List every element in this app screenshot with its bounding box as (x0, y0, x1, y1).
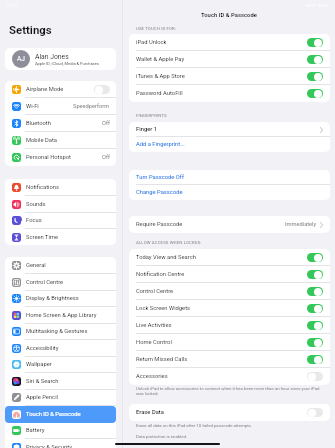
staticText: Airplane Mode (26, 86, 94, 93)
button[interactable]: Touch ID & Passcode (5, 406, 116, 423)
button[interactable]: Airplane Mode (5, 81, 116, 98)
staticText: Siri & Search (26, 378, 110, 385)
button[interactable]: Password AutoFill (129, 85, 330, 102)
staticText: Bluetooth (26, 120, 102, 127)
staticText: Require Passcode (136, 221, 285, 228)
button[interactable]: Sounds (5, 196, 116, 213)
staticText: Display & Brightness (26, 295, 110, 302)
button[interactable]: Bluetooth (5, 115, 116, 132)
staticText: Home Control (136, 339, 307, 346)
button[interactable]: Lock Screen Widgets (129, 300, 330, 317)
button[interactable]: Turn Passcode Off (129, 170, 330, 185)
button[interactable]: On (307, 38, 323, 47)
button[interactable]: Control Centre (129, 283, 330, 300)
button[interactable]: On (307, 355, 323, 364)
button[interactable]: On (307, 321, 323, 330)
button[interactable]: Notification Centre (129, 266, 330, 283)
staticText: Accessibility (26, 345, 110, 352)
button[interactable]: Apple Pencil (5, 389, 116, 406)
staticText: Personal Hotspot (26, 154, 102, 161)
button[interactable]: Off (307, 372, 323, 381)
staticText: USE TOUCH ID FOR: (136, 26, 177, 31)
staticText: Control Centre (26, 279, 110, 286)
button[interactable]: Home Control (129, 334, 330, 351)
button[interactable]: On (307, 338, 323, 347)
button[interactable]: On (307, 72, 323, 81)
staticText: Data protection is enabled. (136, 434, 188, 439)
staticText: Immediately (285, 221, 317, 228)
staticText: Mobile Data (26, 137, 110, 144)
button[interactable]: Wallet & Apple Pay (129, 51, 330, 68)
staticText: Change Passcode (136, 189, 323, 196)
button[interactable]: On (307, 304, 323, 313)
button[interactable]: Control Centre (5, 274, 116, 291)
button[interactable]: Wi-Fi (5, 98, 116, 115)
staticText: Wallpaper (26, 361, 110, 368)
staticText: FINGERPRINTS (136, 113, 167, 118)
staticText: iPad Unlock (136, 39, 307, 46)
staticText: Erase all data on this iPad after 10 fai… (136, 423, 252, 428)
button[interactable]: iTunes & App Store (129, 68, 330, 85)
staticText: Return Missed Calls (136, 356, 307, 363)
button[interactable]: Require Passcode (129, 216, 330, 233)
button[interactable]: Live Activities (129, 317, 330, 334)
button[interactable]: On (307, 55, 323, 64)
button[interactable]: Display & Brightness (5, 290, 116, 307)
staticText: Turn Passcode Off (136, 174, 323, 181)
staticText: Touch ID & Passcode (123, 12, 335, 19)
button[interactable]: Accessories (129, 368, 330, 385)
staticText: Alan Jones (35, 53, 69, 61)
button[interactable]: Today View and Search (129, 249, 330, 266)
staticText: Touch ID & Passcode (26, 411, 110, 418)
button[interactable]: Focus (5, 212, 116, 229)
button[interactable]: iPad Unlock (129, 34, 330, 51)
button[interactable]: Privacy & Security (5, 439, 116, 448)
staticText: General (26, 262, 110, 269)
button[interactable]: Notifications (5, 179, 116, 196)
button[interactable]: Siri & Search (5, 373, 116, 390)
button[interactable]: Erase Data (129, 404, 330, 421)
button[interactable]: Finger 1 (129, 122, 330, 137)
button[interactable]: Battery (5, 422, 116, 439)
staticText: Multitasking & Gestures (26, 328, 110, 335)
button[interactable]: Off (307, 408, 323, 417)
button[interactable]: On (307, 89, 323, 98)
button[interactable]: Accessibility (5, 340, 116, 357)
button[interactable]: Multitasking & Gestures (5, 323, 116, 340)
button[interactable]: On (307, 287, 323, 296)
staticText: Live Activities (136, 322, 307, 329)
button[interactable]: Home Screen & App Library (5, 307, 116, 324)
staticText: Apple Pencil (26, 394, 110, 401)
staticText: Notification Centre (136, 271, 307, 278)
button[interactable]: Mobile Data (5, 132, 116, 149)
staticText: Focus (26, 217, 110, 224)
button[interactable]: Personal Hotspot (5, 149, 116, 166)
button[interactable]: General (5, 257, 116, 274)
staticText: Password AutoFill (136, 90, 307, 97)
staticText: Settings (9, 23, 52, 36)
button[interactable]: On (307, 253, 323, 262)
button[interactable]: Screen Time (5, 229, 116, 245)
staticText: iTunes & App Store (136, 73, 307, 80)
staticText: Lock Screen Widgets (136, 305, 307, 312)
staticText: Apple ID, iCloud, Media & Purchases (35, 61, 99, 66)
staticText: Wallet & Apple Pay (136, 56, 307, 63)
button[interactable]: On (307, 270, 323, 279)
button[interactable]: Wallpaper (5, 356, 116, 373)
staticText: Speedperform (73, 103, 110, 110)
staticText: Finger 1 (136, 126, 320, 133)
staticText: AJ (17, 55, 25, 63)
button[interactable]: Add a Fingerprint... (129, 137, 330, 152)
staticText: Off (102, 154, 110, 161)
staticText: Accessories (136, 373, 307, 380)
button[interactable]: AJ (5, 48, 116, 70)
button[interactable]: Off (94, 85, 110, 94)
button[interactable]: Change Passcode (129, 185, 330, 200)
staticText: Notifications (26, 184, 110, 191)
staticText: Wi-Fi (26, 103, 73, 110)
staticText: ALLOW ACCESS WHEN LOCKED: (136, 240, 202, 245)
staticText: Privacy & Security (26, 444, 110, 448)
button[interactable]: Return Missed Calls (129, 351, 330, 368)
